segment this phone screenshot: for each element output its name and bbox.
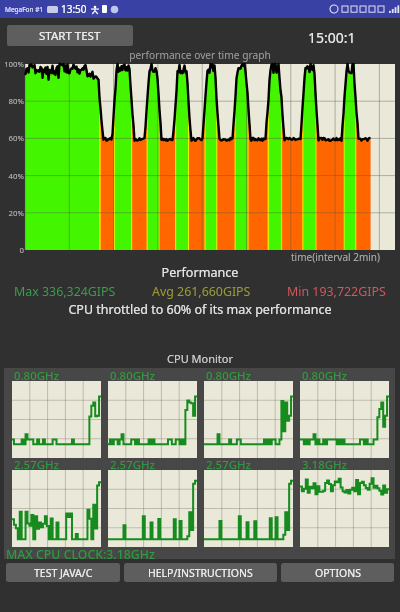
staticText: 3.18GHz (302, 457, 347, 473)
staticText: Performance (0, 264, 400, 281)
staticText: START TEST (39, 28, 101, 44)
button[interactable]: HELP/INSTRUCTIONS (124, 563, 277, 582)
staticText: 15:00:1 (308, 28, 356, 47)
staticText: OPTIONS (315, 566, 361, 580)
staticText: 13:50 (61, 2, 87, 16)
staticText: 60% (0, 133, 24, 144)
staticText: 2.57GHz (110, 457, 155, 473)
staticText: 20% (0, 208, 24, 219)
staticText: CPU Monitor (0, 351, 400, 366)
staticText: time(interval 2min) (291, 250, 381, 264)
staticText: 80% (0, 96, 24, 107)
button[interactable]: TEST JAVA/C (6, 563, 120, 582)
staticText: 0 (0, 245, 24, 256)
staticText: CPU throttled to 60% of its max performa… (0, 301, 400, 318)
staticText: HELP/INSTRUCTIONS (148, 566, 253, 580)
staticText: 0.80GHz (14, 368, 59, 384)
staticText: 2.57GHz (14, 457, 59, 473)
staticText: 2.57GHz (206, 457, 251, 473)
staticText: MegaFon #1 (5, 5, 44, 14)
staticText: 0.80GHz (302, 368, 347, 384)
staticText: 0.80GHz (206, 368, 251, 384)
staticText: Min 193,722GIPS (287, 283, 386, 300)
button[interactable]: START TEST (7, 25, 133, 46)
staticText: 0.80GHz (110, 368, 155, 384)
staticText: MAX CPU CLOCK:3.18GHz (6, 546, 155, 563)
staticText: 40% (0, 171, 24, 182)
staticText: 100% (0, 59, 24, 70)
staticText: performance over time graph (0, 48, 400, 62)
button[interactable]: OPTIONS (281, 563, 394, 582)
staticText: Max 336,324GIPS (14, 283, 116, 300)
staticText: TEST JAVA/C (34, 566, 93, 580)
staticText: Avg 261,660GIPS (152, 283, 251, 300)
